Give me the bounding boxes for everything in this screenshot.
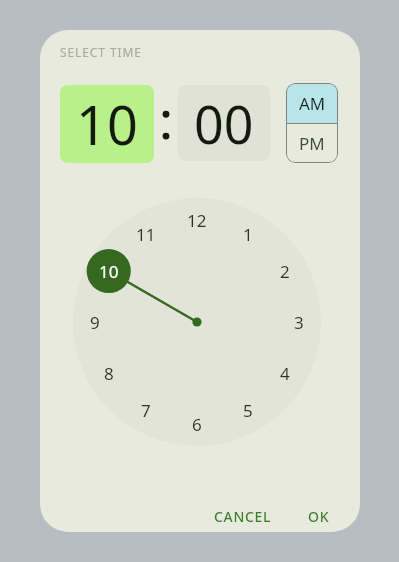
- button[interactable]: 12: [180, 207, 214, 233]
- button[interactable]: 10: [60, 85, 154, 163]
- staticText: 7: [141, 399, 151, 422]
- staticText: 2: [280, 260, 290, 283]
- button[interactable]: 10: [92, 258, 126, 284]
- other: Clock dial: [73, 198, 321, 446]
- button[interactable]: 2: [268, 258, 302, 284]
- button[interactable]: 00: [178, 85, 270, 161]
- button[interactable]: 11: [129, 221, 163, 247]
- button[interactable]: 6: [180, 411, 214, 437]
- staticText: 4: [280, 362, 290, 385]
- button[interactable]: 5: [231, 397, 265, 423]
- staticText: 3: [294, 311, 304, 334]
- button[interactable]: CANCEL: [204, 500, 282, 532]
- button[interactable]: 9: [78, 309, 112, 335]
- button[interactable]: OK: [298, 500, 340, 532]
- staticText: 6: [192, 413, 202, 436]
- button[interactable]: 3: [282, 309, 316, 335]
- staticText: OK: [308, 507, 330, 525]
- button[interactable]: 7: [129, 397, 163, 423]
- staticText: 1: [243, 223, 253, 246]
- staticText: 10: [76, 87, 138, 161]
- staticText: 8: [104, 362, 114, 385]
- button[interactable]: 8: [92, 360, 126, 386]
- button[interactable]: 1: [231, 221, 265, 247]
- staticText: 12: [187, 209, 207, 232]
- staticText: 5: [243, 399, 253, 422]
- button[interactable]: 4: [268, 360, 302, 386]
- staticText: PM: [299, 132, 325, 155]
- staticText: 10: [99, 260, 119, 283]
- staticText: 11: [136, 223, 156, 246]
- button[interactable]: AM: [286, 83, 338, 123]
- button[interactable]: PM: [286, 124, 338, 163]
- staticText: AM: [299, 92, 326, 115]
- staticText: SELECT TIME: [60, 44, 142, 60]
- staticText: 9: [90, 311, 100, 334]
- staticText: 00: [194, 88, 254, 159]
- staticText: CANCEL: [214, 507, 272, 525]
